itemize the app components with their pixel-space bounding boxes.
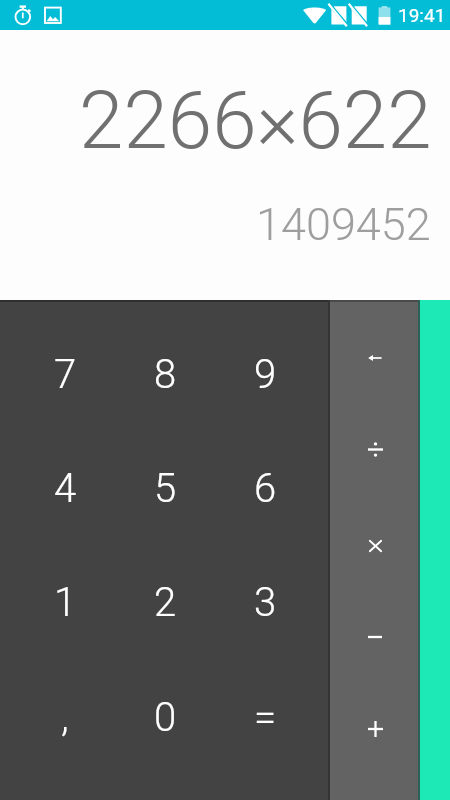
button[interactable]: 0 [110,675,220,800]
staticText: , [61,694,69,741]
staticText: 5 [154,465,177,512]
button[interactable]: 2 [110,550,220,675]
staticText: 8 [154,351,177,398]
staticText: 1409452 [256,198,431,251]
button[interactable]: Plus [330,700,420,800]
staticText: 3 [254,579,277,626]
button[interactable]: 5 [110,425,220,550]
button[interactable]: 2266×622 [79,74,432,168]
button[interactable]: Backspace [330,300,420,400]
staticText: 6 [254,465,277,512]
button[interactable]: 3 [220,550,330,675]
button[interactable]: Multiply [330,500,420,600]
button[interactable]: 1409452 [256,198,431,251]
button[interactable]: = [220,675,330,800]
button[interactable]: 4 [0,425,110,550]
staticText: 9 [254,351,277,398]
button[interactable]: Minus [330,600,420,700]
button[interactable]: 7 [0,300,110,425]
button[interactable]: Divide [330,400,420,500]
staticText: 2266×622 [79,74,432,168]
button[interactable]: 6 [220,425,330,550]
staticText: 2 [154,579,177,626]
button[interactable]: 8 [110,300,220,425]
staticText: = [254,694,277,741]
staticText: 19:41 [398,4,446,26]
staticText: 0 [154,694,177,741]
staticText: 1 [54,579,77,626]
button[interactable]: , [0,675,110,800]
staticText: 4 [54,465,77,512]
button[interactable]: 1 [0,550,110,675]
staticText: 7 [54,351,77,398]
button[interactable]: 9 [220,300,330,425]
